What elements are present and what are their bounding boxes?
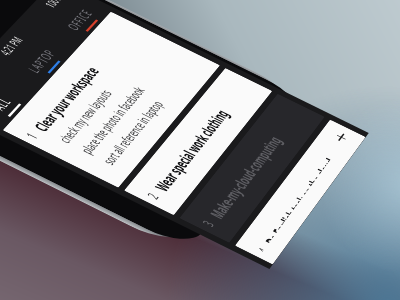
staticText: 100% [40,0,66,10]
staticText: Clear your workspace [29,63,104,135]
button[interactable]: LAPTOP [2,31,77,91]
staticText: LAPTOP [23,46,59,75]
button[interactable]: ALL [0,72,39,134]
staticText: 3 [197,217,218,229]
staticText: check my new layouts [54,86,115,145]
staticText: Wear special work clothing [149,106,233,195]
staticText: sort all reference in laptop [98,97,167,167]
button[interactable]: 4 [235,119,366,264]
button[interactable]: Add task [333,130,349,145]
staticText: 4 [253,245,264,252]
button[interactable]: OFFICE [41,0,114,48]
staticText: 2 [142,190,162,202]
staticText: OFFICE [62,6,96,33]
staticText: 1 [21,130,41,141]
button[interactable]: 3 [179,94,325,243]
staticText: ALL [0,94,15,113]
staticText: place the photo in facebook [76,84,148,156]
staticText: 4:21 PM [0,33,27,58]
staticText: Do English task on the cloud computing s… [260,155,331,243]
staticText: Make-my-cloud-computing [204,133,286,222]
button[interactable]: 2 [124,68,272,215]
button[interactable]: 1 [3,11,220,188]
